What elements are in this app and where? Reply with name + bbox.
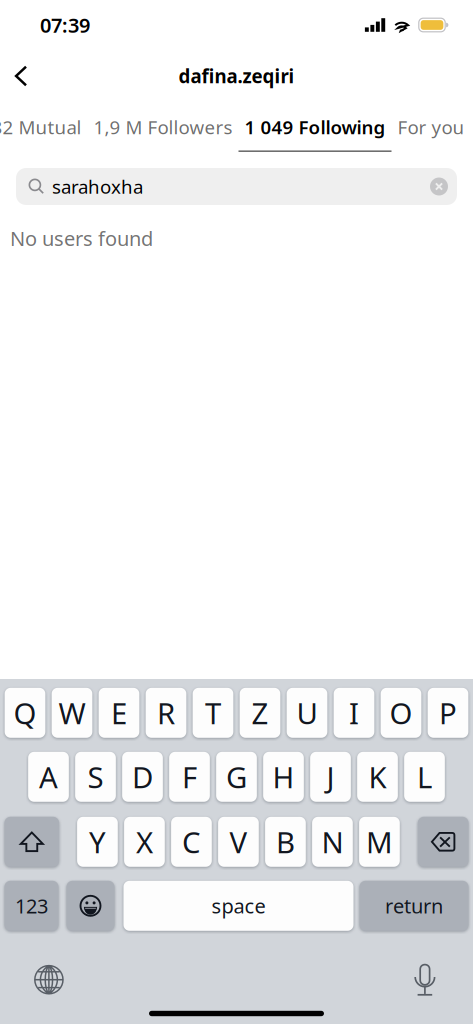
staticText: B <box>276 822 295 861</box>
button[interactable]: R <box>146 688 186 738</box>
button[interactable]: 123 <box>4 881 58 931</box>
staticText: I <box>349 693 359 732</box>
button[interactable]: Y <box>77 817 118 867</box>
button[interactable]: Shift <box>4 817 59 867</box>
button[interactable]: K <box>357 752 398 802</box>
button[interactable]: C <box>171 817 212 867</box>
staticText: C <box>182 822 201 861</box>
button[interactable]: return <box>359 881 468 931</box>
button[interactable]: V <box>218 817 259 867</box>
staticText: K <box>368 757 386 796</box>
button[interactable]: Q <box>5 688 45 738</box>
staticText: Z <box>251 693 268 732</box>
button[interactable]: E <box>99 688 139 738</box>
button[interactable]: L <box>404 752 445 802</box>
button[interactable]: I <box>334 688 374 738</box>
staticText: T <box>205 693 221 732</box>
staticText: X <box>136 822 153 861</box>
staticText: Y <box>89 822 106 861</box>
button[interactable]: Backspace <box>418 817 468 867</box>
button[interactable]: For you <box>391 102 470 152</box>
staticText: S <box>87 757 103 796</box>
staticText: dafina.zeqiri <box>178 64 294 88</box>
staticText: 1 049 Following <box>244 115 385 139</box>
staticText: J <box>326 757 334 796</box>
button[interactable]: M <box>359 817 400 867</box>
staticText: 123 <box>15 892 48 919</box>
button[interactable]: Emoji <box>66 881 114 931</box>
staticText: D <box>132 757 153 796</box>
button[interactable]: H <box>263 752 304 802</box>
button[interactable]: Next keyboard <box>26 957 72 1003</box>
button[interactable]: D <box>122 752 163 802</box>
staticText: H <box>272 757 294 796</box>
button[interactable]: X <box>124 817 165 867</box>
staticText: N <box>321 822 343 861</box>
staticText: F <box>182 757 197 796</box>
button[interactable]: A <box>28 752 69 802</box>
staticText: 07:39 <box>40 12 90 38</box>
staticText: For you <box>397 115 464 139</box>
staticText: W <box>58 693 85 732</box>
button[interactable]: O <box>381 688 421 738</box>
staticText: U <box>296 693 317 732</box>
button[interactable]: Dictation <box>402 957 448 1003</box>
staticText: O <box>389 693 412 732</box>
button[interactable]: P <box>428 688 468 738</box>
staticText: space <box>211 892 265 919</box>
staticText: 1,9 M Followers <box>93 115 232 139</box>
button[interactable]: 1 049 Following <box>238 102 391 152</box>
button[interactable]: N <box>312 817 353 867</box>
staticText: return <box>385 892 443 919</box>
staticText: sarahoxha <box>52 174 143 199</box>
button[interactable]: U <box>287 688 327 738</box>
staticText: V <box>229 822 247 861</box>
button[interactable]: 82 Mutual <box>0 102 87 152</box>
button[interactable]: S <box>75 752 116 802</box>
staticText: 82 Mutual <box>0 115 81 139</box>
button[interactable]: J <box>310 752 351 802</box>
button[interactable]: W <box>52 688 92 738</box>
staticText: G <box>226 757 247 796</box>
staticText: M <box>366 822 393 861</box>
staticText: A <box>39 757 58 796</box>
button[interactable]: 1,9 M Followers <box>87 102 238 152</box>
button[interactable]: Z <box>240 688 280 738</box>
button[interactable]: T <box>193 688 233 738</box>
staticText: R <box>157 693 175 732</box>
button[interactable]: space <box>123 881 353 931</box>
staticText: L <box>417 757 432 796</box>
button[interactable]: Clear text <box>430 177 457 195</box>
staticText: No users found <box>10 225 153 252</box>
button[interactable]: G <box>216 752 257 802</box>
staticText: Q <box>13 693 36 732</box>
staticText: P <box>439 693 457 732</box>
button[interactable]: Back <box>0 54 42 98</box>
staticText: E <box>111 693 127 732</box>
button[interactable]: F <box>169 752 210 802</box>
button[interactable]: B <box>265 817 306 867</box>
